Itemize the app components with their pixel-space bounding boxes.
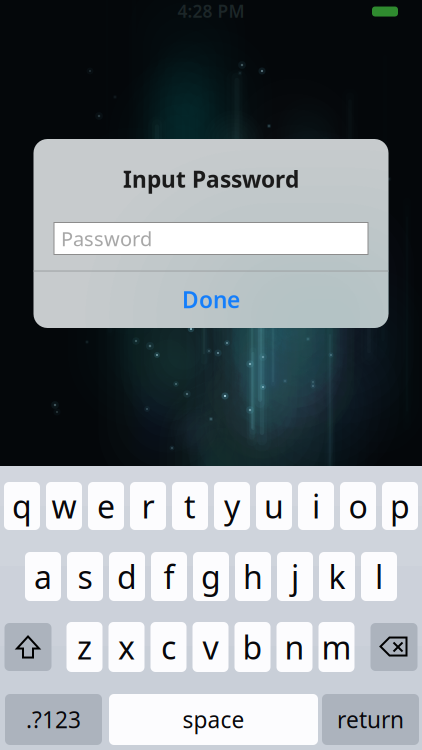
- staticText: w: [51, 485, 76, 527]
- staticText: b: [242, 626, 262, 668]
- button[interactable]: h: [235, 552, 271, 601]
- staticText: r: [141, 485, 154, 527]
- staticText: z: [77, 626, 92, 668]
- staticText: u: [264, 485, 284, 527]
- button[interactable]: d: [109, 552, 145, 601]
- staticText: e: [97, 485, 115, 527]
- staticText: j: [291, 555, 299, 598]
- staticText: l: [375, 555, 383, 598]
- staticText: d: [117, 555, 137, 598]
- button[interactable]: t: [172, 482, 208, 530]
- staticText: Password: [61, 225, 152, 252]
- button[interactable]: Done: [33, 271, 388, 327]
- button[interactable]: n: [276, 622, 312, 672]
- staticText: y: [224, 485, 240, 527]
- staticText: p: [390, 485, 410, 527]
- staticText: q: [12, 485, 32, 527]
- staticText: .?123: [26, 704, 81, 734]
- staticText: h: [243, 555, 263, 598]
- button[interactable]: return: [322, 694, 419, 745]
- button[interactable]: f: [151, 552, 187, 601]
- staticText: g: [201, 555, 221, 598]
- staticText: v: [202, 626, 218, 668]
- button[interactable]: o: [340, 482, 376, 530]
- staticText: 4:28 PM: [177, 0, 244, 22]
- button[interactable]: .?123: [5, 694, 102, 745]
- staticText: c: [161, 626, 176, 668]
- staticText: s: [77, 555, 92, 598]
- button[interactable]: x: [108, 622, 144, 672]
- staticText: a: [34, 555, 52, 598]
- button[interactable]: Shift: [4, 623, 51, 671]
- button[interactable]: l: [361, 552, 397, 601]
- staticText: t: [184, 485, 196, 527]
- button[interactable]: w: [46, 482, 82, 530]
- button[interactable]: c: [150, 622, 186, 672]
- staticText: o: [348, 485, 367, 527]
- button[interactable]: y: [214, 482, 250, 530]
- button[interactable]: b: [234, 622, 270, 672]
- button[interactable]: p: [382, 482, 418, 530]
- button[interactable]: z: [66, 622, 102, 672]
- staticText: x: [118, 626, 135, 668]
- button[interactable]: j: [277, 552, 313, 601]
- button[interactable]: Battery: [372, 3, 422, 16]
- staticText: n: [284, 626, 304, 668]
- button[interactable]: i: [298, 482, 334, 530]
- staticText: f: [163, 555, 174, 598]
- staticText: k: [328, 555, 345, 598]
- button[interactable]: k: [319, 552, 355, 601]
- button[interactable]: a: [25, 552, 61, 601]
- staticText: space: [182, 704, 244, 734]
- staticText: i: [312, 485, 320, 527]
- button[interactable]: v: [192, 622, 228, 672]
- button[interactable]: g: [193, 552, 229, 601]
- button[interactable]: m: [318, 622, 354, 672]
- button[interactable]: r: [130, 482, 166, 530]
- button[interactable]: q: [4, 482, 40, 530]
- button[interactable]: s: [67, 552, 103, 601]
- staticText: m: [321, 626, 351, 668]
- button[interactable]: space: [109, 694, 318, 745]
- button[interactable]: Delete: [370, 623, 417, 671]
- staticText: Done: [182, 284, 240, 314]
- button[interactable]: u: [256, 482, 292, 530]
- button[interactable]: e: [88, 482, 124, 530]
- staticText: Input Password: [123, 164, 299, 194]
- staticText: return: [337, 704, 404, 734]
